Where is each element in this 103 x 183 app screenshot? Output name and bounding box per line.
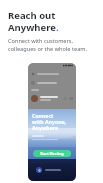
button[interactable]: Add contact — [31, 70, 73, 77]
other: Video call — [70, 97, 73, 100]
button[interactable]: Call — [31, 94, 73, 103]
button[interactable]: Start Meeting — [33, 150, 71, 157]
staticText: Connect with Anyone, Anywhere — [32, 112, 67, 131]
staticText: Start Meeting — [40, 151, 64, 156]
other: Add contact — [31, 72, 35, 76]
staticText: Reach out Anywhere. — [8, 9, 97, 33]
other: Search — [31, 81, 35, 85]
button[interactable]: Search — [31, 79, 73, 86]
other: Call — [64, 97, 67, 100]
staticText: Connect with customers, colleagues or th… — [8, 37, 88, 53]
